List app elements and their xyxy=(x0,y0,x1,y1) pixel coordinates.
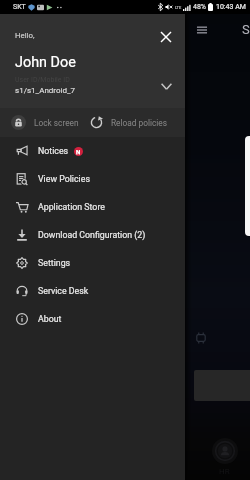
button[interactable]: Download Configuration (2) xyxy=(0,221,185,249)
staticText: 10:43 AM xyxy=(216,3,246,11)
staticText: Download Configuration (2) xyxy=(38,230,146,240)
button[interactable]: HR profile xyxy=(212,438,238,464)
button[interactable]: View Policies xyxy=(0,165,185,193)
button[interactable]: Notices xyxy=(0,137,185,165)
button[interactable]: Close navigation drawer xyxy=(155,26,177,48)
staticText: Notices xyxy=(38,146,69,156)
staticText: Application Store xyxy=(38,202,105,212)
staticText: Settings xyxy=(38,258,71,268)
staticText: About xyxy=(38,314,62,324)
button[interactable]: Lock screen xyxy=(0,108,89,137)
staticText: User ID/Mobile ID xyxy=(15,76,70,84)
staticText: HR xyxy=(219,467,230,476)
button[interactable]: About xyxy=(0,305,185,333)
button[interactable]: Application Store xyxy=(0,193,185,221)
staticText: LTE xyxy=(175,5,182,10)
staticText: Lock screen xyxy=(34,118,79,128)
staticText: John Doe xyxy=(15,54,76,71)
staticText: View Policies xyxy=(38,174,90,184)
staticText: s1/s1_Android_7 xyxy=(15,86,76,95)
staticText: 48% xyxy=(193,3,206,11)
staticText: Service Desk xyxy=(38,286,89,296)
button[interactable]: Switch account xyxy=(155,75,177,97)
staticText: Reload policies xyxy=(111,118,167,128)
button[interactable]: Open navigation drawer xyxy=(195,23,209,37)
button[interactable]: Settings xyxy=(0,249,185,277)
staticText: SKT xyxy=(13,3,26,11)
button[interactable]: Reload policies xyxy=(89,108,185,137)
staticText: N xyxy=(76,148,81,155)
staticText: Hello, xyxy=(15,31,35,40)
staticText: S xyxy=(242,22,250,37)
button[interactable]: Service Desk xyxy=(0,277,185,305)
